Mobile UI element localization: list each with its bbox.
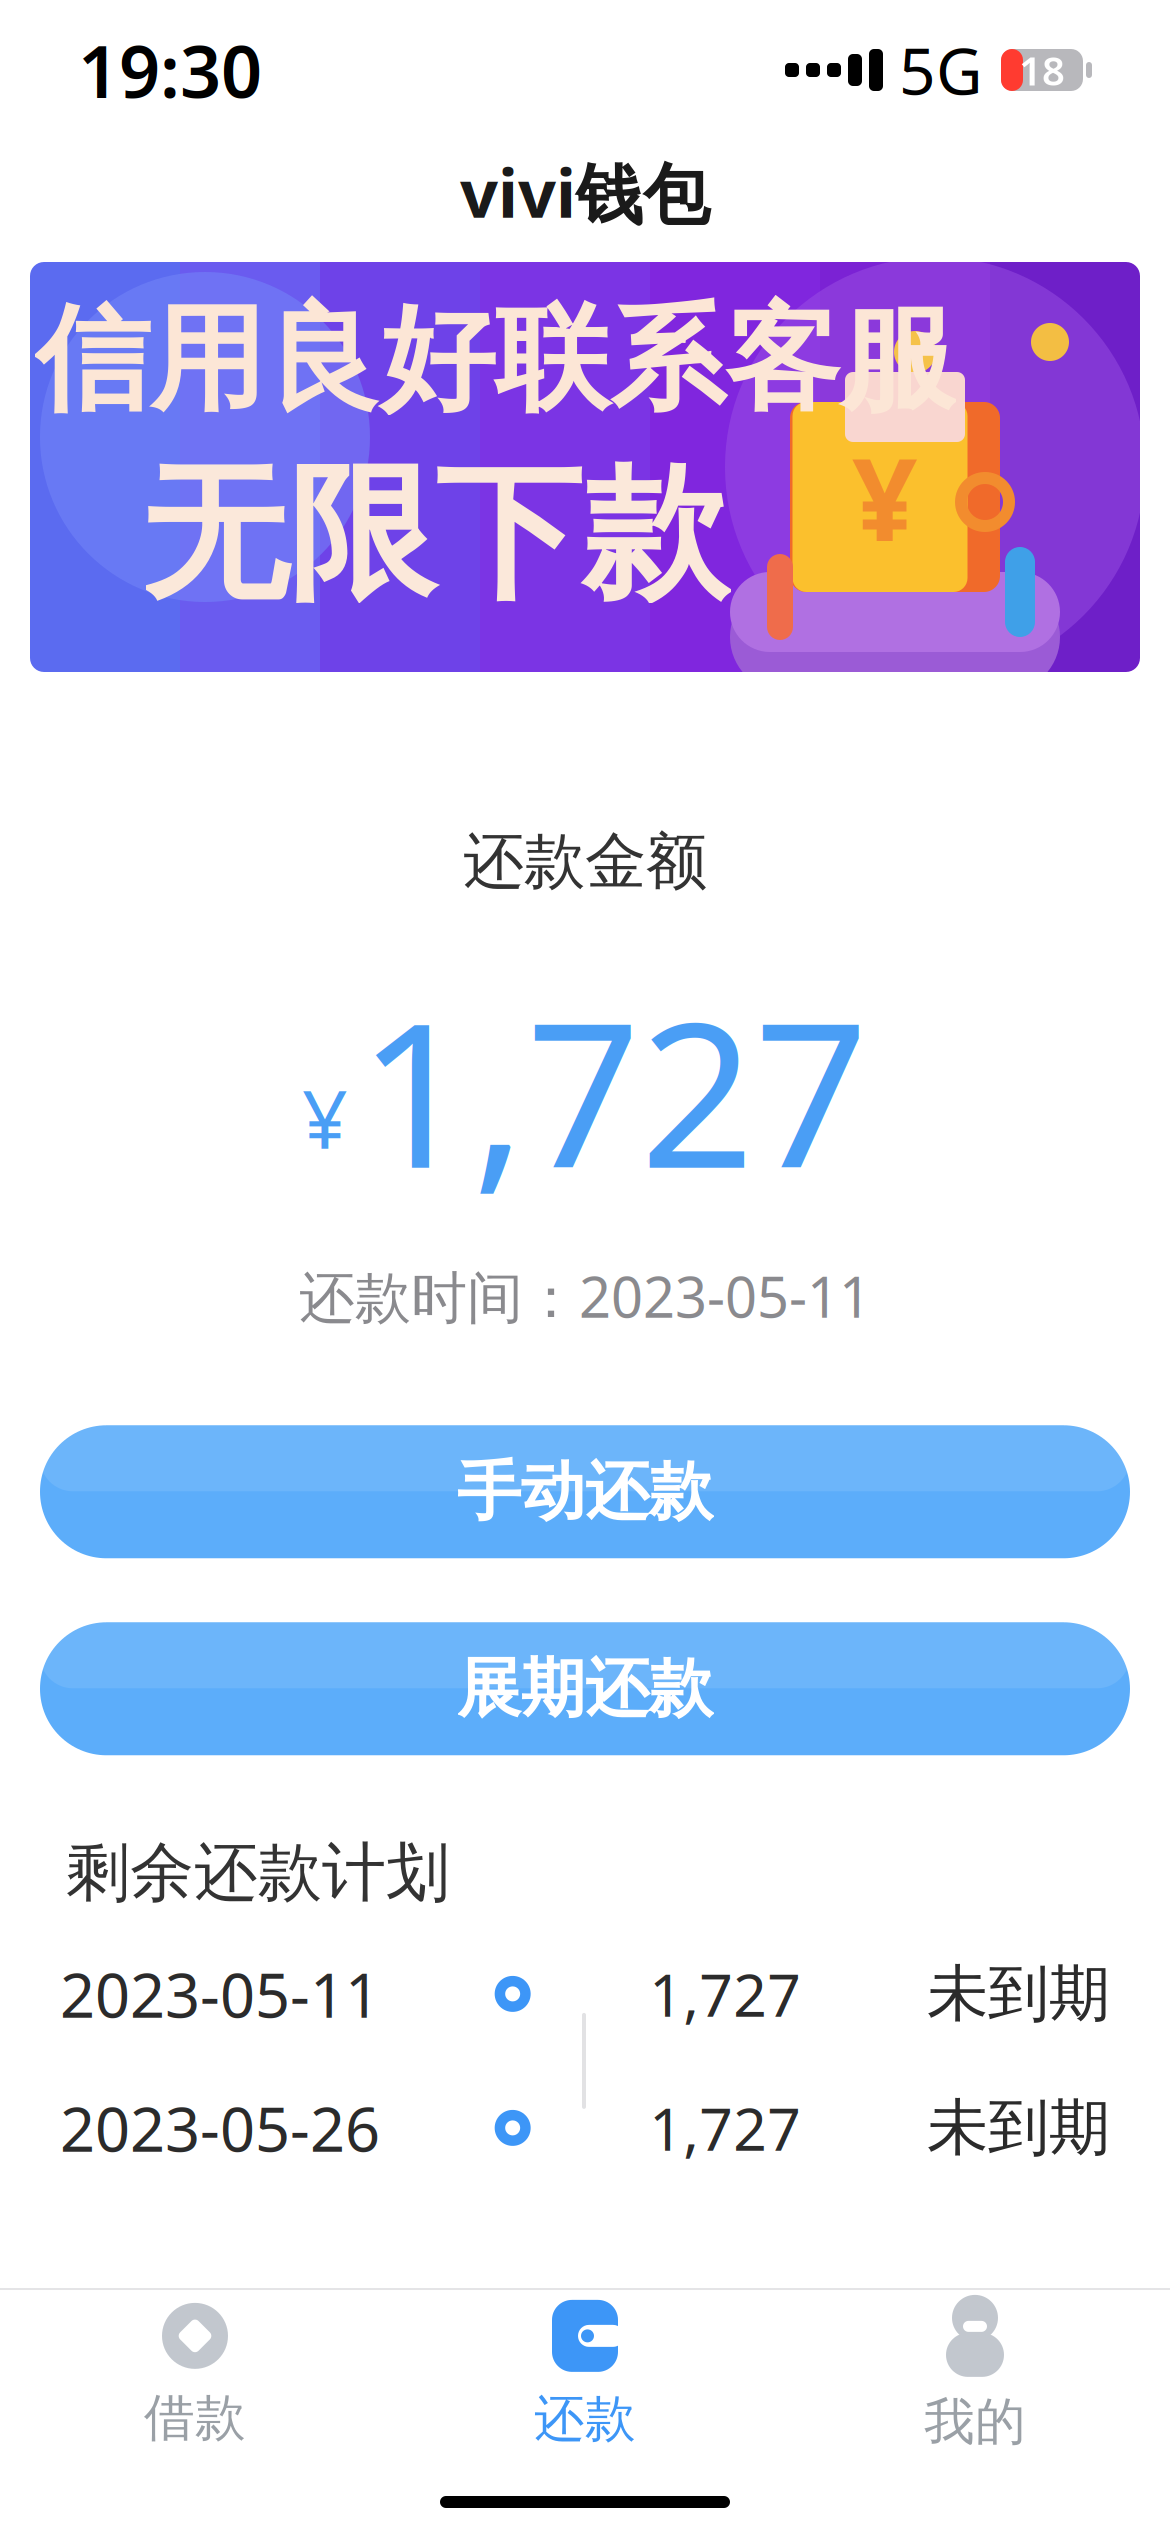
button[interactable]: 我的 [780,2290,1170,2460]
button[interactable]: 还款 [390,2290,780,2460]
staticText: 未到期 [927,2090,1110,2165]
staticText: 18 [1019,43,1065,96]
staticText: 剩余还款计划 [66,1833,450,1912]
staticText: 19:30 [78,22,262,118]
button[interactable]: 展期还款 [40,1622,1130,1755]
staticText: 还款时间：2023-05-11 [299,1259,871,1333]
staticText: 还款金额 [463,824,707,899]
staticText: 还款 [534,2388,636,2450]
staticText: 我的 [924,2391,1026,2453]
staticText: 5G [899,27,983,112]
staticText: 手动还款 [457,1452,713,1531]
staticText: 2023-05-26 [60,2087,380,2169]
staticText: 未到期 [927,1956,1110,2031]
button[interactable]: 信用良好联系客服 无限下款 [30,262,1140,672]
staticText: 展期还款 [457,1649,713,1728]
staticText: 信用良好联系客服 [35,289,955,430]
staticText: 无限下款 [141,444,729,624]
staticText: 1,727 [649,1955,801,2033]
staticText: 2023-05-11 [60,1953,380,2035]
staticText: 1,727 [358,957,868,1223]
staticText: vivi钱包 [460,148,710,236]
staticText: ¥ [852,421,918,573]
button[interactable]: 借款 [0,2290,390,2460]
button[interactable]: 手动还款 [40,1425,1130,1558]
staticText: 1,727 [649,2089,801,2167]
staticText: 借款 [144,2387,246,2449]
staticText: ¥ [302,1064,348,1170]
